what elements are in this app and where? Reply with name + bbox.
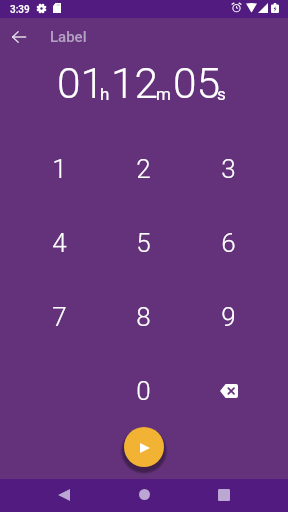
button[interactable]: 8 bbox=[101, 280, 186, 354]
button[interactable]: Home bbox=[124, 479, 164, 512]
staticText: 0 bbox=[136, 376, 151, 406]
button[interactable]: 3 bbox=[186, 132, 271, 206]
button[interactable]: Start timer bbox=[124, 427, 164, 467]
staticText: 3 bbox=[221, 154, 236, 184]
staticText: 7 bbox=[52, 302, 67, 332]
button[interactable]: 4 bbox=[17, 206, 101, 280]
button[interactable]: Back bbox=[44, 479, 84, 512]
staticText: 05 bbox=[173, 59, 221, 105]
button[interactable] bbox=[186, 354, 271, 428]
staticText: 2 bbox=[136, 154, 151, 184]
button[interactable]: 2 bbox=[101, 132, 186, 206]
button[interactable]: 1 bbox=[17, 132, 101, 206]
staticText: h bbox=[100, 84, 110, 104]
staticText: Label bbox=[50, 28, 87, 46]
button[interactable]: 5 bbox=[101, 206, 186, 280]
staticText: m bbox=[156, 84, 171, 104]
button[interactable]: 6 bbox=[186, 206, 271, 280]
button[interactable]: 9 bbox=[186, 280, 271, 354]
staticText: 3:39 bbox=[10, 4, 30, 16]
staticText: 5 bbox=[136, 228, 151, 258]
staticText: 01 bbox=[57, 59, 105, 105]
staticText: 8 bbox=[136, 302, 151, 332]
staticText: 6 bbox=[221, 228, 236, 258]
staticText: s bbox=[217, 84, 226, 104]
button[interactable]: Back bbox=[7, 25, 31, 49]
staticText: 4 bbox=[52, 228, 67, 258]
button[interactable]: Recent apps bbox=[204, 479, 244, 512]
button[interactable]: 0 bbox=[101, 354, 186, 428]
button[interactable]: 7 bbox=[17, 280, 101, 354]
staticText: 1 bbox=[52, 154, 67, 184]
staticText: 9 bbox=[221, 302, 236, 332]
staticText: 12 bbox=[111, 59, 159, 105]
